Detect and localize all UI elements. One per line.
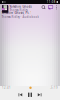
button[interactable]: Next chapter — [37, 92, 43, 98]
button[interactable]: More options — [55, 5, 58, 10]
staticText: Thomas Ridley · Audiobook — [1, 15, 38, 19]
button[interactable]: Cast to device — [48, 5, 53, 10]
staticText: Yorkshire Ghosts — [9, 5, 31, 8]
staticText: -5:19 — [50, 86, 58, 89]
staticText: Yorkshire Ghosts, Pt. 1 — [1, 11, 32, 15]
button[interactable]: Previous chapter — [17, 92, 23, 98]
staticText: Thomas Ridley — [9, 8, 27, 12]
staticText: 12:41 — [2, 86, 11, 89]
button[interactable]: Search — [41, 5, 46, 10]
button[interactable]: Pause — [27, 92, 33, 98]
staticText: 11:08 — [47, 0, 56, 4]
